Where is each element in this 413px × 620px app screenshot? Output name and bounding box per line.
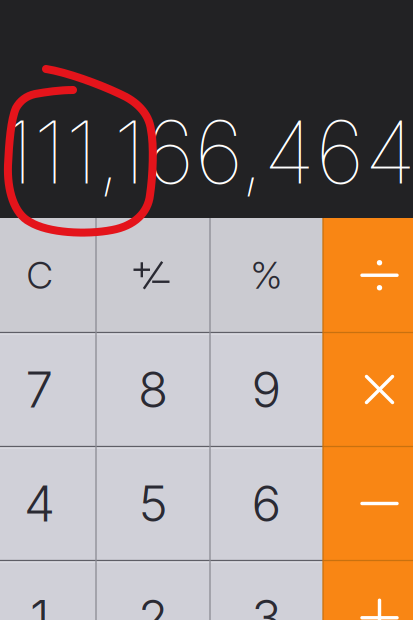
button[interactable]: 3 — [210, 560, 323, 620]
button[interactable]: Toggle sign — [0, 0, 413, 620]
staticText: 6 — [251, 474, 281, 533]
staticText: 8 — [138, 360, 168, 419]
button[interactable]: Clear — [0, 218, 96, 332]
button[interactable]: 2 — [96, 560, 210, 620]
button[interactable]: 7 — [0, 332, 96, 446]
staticText: 9 — [251, 360, 281, 419]
button[interactable]: 8 — [96, 332, 210, 446]
staticText: 3 — [251, 588, 281, 620]
staticText: 1 — [30, 588, 49, 620]
staticText: 2 — [138, 588, 168, 620]
button[interactable]: 1 — [0, 560, 96, 620]
staticText: 111,166,464 — [1, 100, 413, 204]
button[interactable]: Percent — [210, 218, 323, 332]
button[interactable]: Divide — [0, 0, 413, 620]
staticText: % — [250, 253, 282, 298]
button[interactable]: Add — [0, 0, 413, 620]
button[interactable]: 4 — [0, 446, 96, 560]
staticText: C — [26, 253, 52, 298]
button[interactable]: 5 — [96, 446, 210, 560]
staticText: 7 — [25, 360, 53, 419]
staticText: 4 — [24, 474, 55, 533]
button[interactable]: Subtract — [0, 0, 413, 620]
button[interactable]: 6 — [210, 446, 323, 560]
button[interactable]: 9 — [210, 332, 323, 446]
button[interactable]: Multiply — [0, 0, 413, 620]
staticText: 5 — [138, 474, 167, 533]
